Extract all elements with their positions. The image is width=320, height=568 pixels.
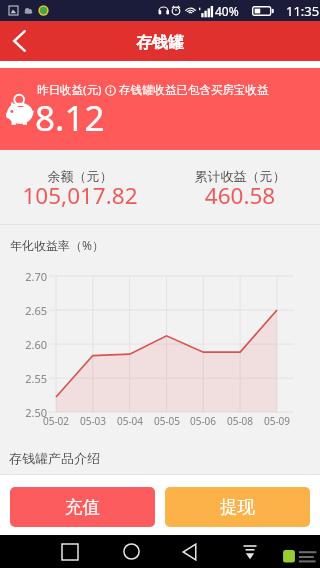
staticText: 460.58 [160, 180, 320, 211]
staticText: 存钱罐产品介绍 [9, 450, 100, 466]
staticText: 累计收益（元） [160, 168, 320, 184]
button[interactable]: Recent apps [50, 535, 90, 568]
button[interactable]: Home [111, 535, 151, 568]
staticText: 40% [215, 3, 239, 19]
button[interactable]: 余额（元） [0, 150, 160, 224]
staticText: 05-08 [220, 414, 260, 428]
staticText: 昨日收益(元) [37, 82, 102, 98]
staticText: 余额（元） [0, 168, 160, 184]
button[interactable]: 累计收益（元） [160, 150, 320, 224]
button[interactable]: 充值 [10, 487, 155, 527]
staticText: 存钱罐收益已包含买房宝收益 [119, 83, 269, 97]
button[interactable]: Hide navigation bar [230, 535, 270, 568]
button[interactable]: Back [170, 535, 210, 568]
staticText: 充值 [65, 496, 100, 518]
button[interactable]: 存钱罐产品介绍 [0, 441, 320, 474]
staticText: 8.12 [35, 94, 105, 142]
staticText: 提现 [220, 496, 255, 518]
staticText: 2.65 [17, 303, 47, 318]
staticText: 年化收益率（%） [10, 237, 104, 253]
button[interactable]: Back [0, 21, 40, 61]
staticText: 05-03 [73, 414, 113, 428]
staticText: 05-06 [183, 414, 223, 428]
staticText: 2.55 [17, 371, 47, 386]
staticText: 105,017.82 [0, 180, 160, 211]
staticText: 05-02 [36, 414, 76, 428]
staticText: 存钱罐 [136, 33, 184, 53]
staticText: 2.50 [17, 405, 47, 420]
staticText: 2.70 [17, 269, 47, 284]
staticText: 11:35 [286, 2, 320, 20]
staticText: 05-09 [257, 414, 297, 428]
staticText: 05-05 [147, 414, 187, 428]
staticText: 2.60 [17, 337, 47, 352]
staticText: 05-04 [110, 414, 150, 428]
button[interactable]: 提现 [165, 487, 310, 527]
